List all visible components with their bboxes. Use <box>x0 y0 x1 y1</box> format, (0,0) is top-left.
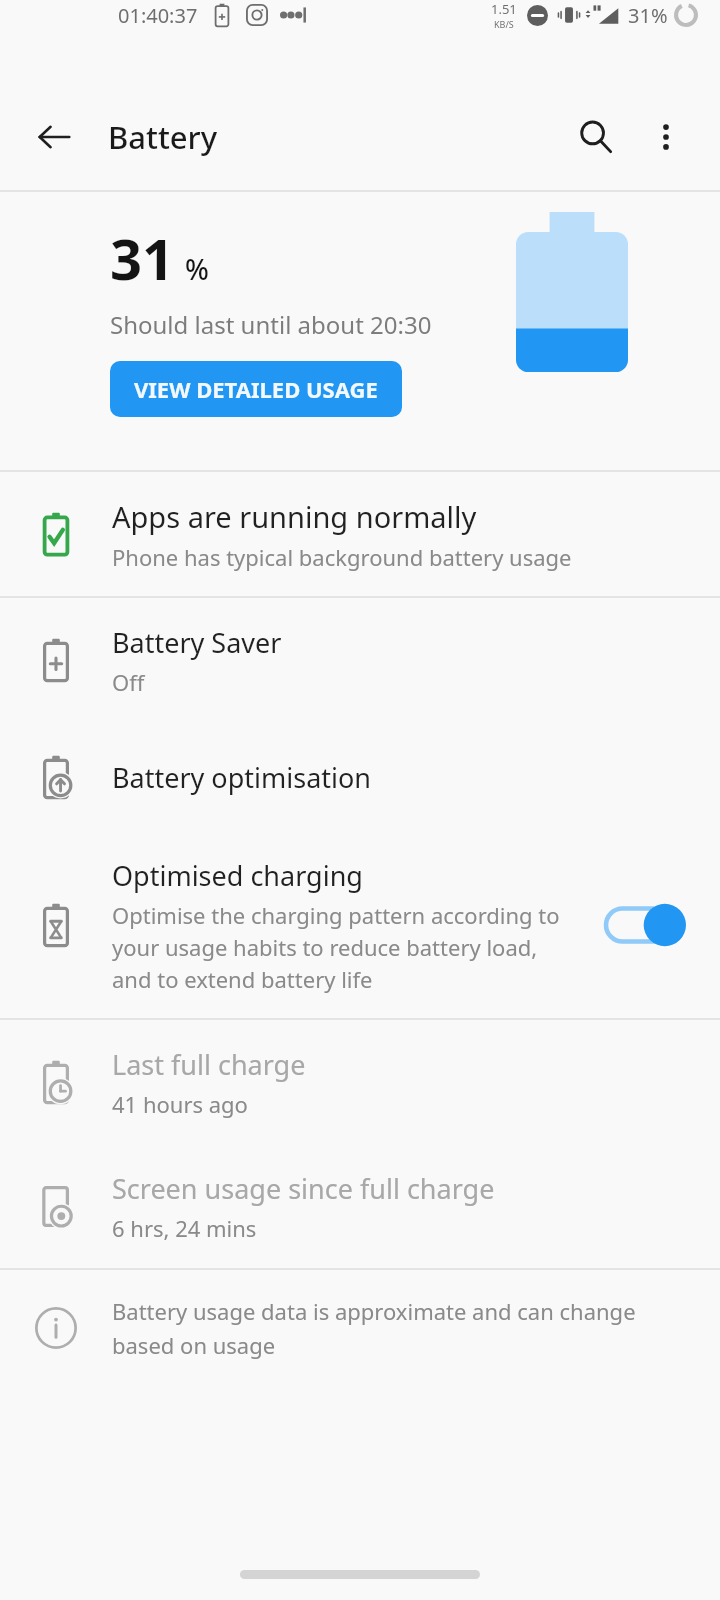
staticText: Optimised charging <box>112 857 363 894</box>
staticText: Last full charge <box>112 1046 306 1083</box>
staticText: Should last until about 20:30 <box>110 308 432 341</box>
button[interactable]: More options <box>638 109 694 165</box>
staticText: Battery usage data is approximate and ca… <box>112 1296 636 1326</box>
staticText: Phone has typical background battery usa… <box>112 542 572 572</box>
staticText: KB/S <box>494 18 514 30</box>
staticText: 31 <box>110 220 175 296</box>
staticText: 1.51 <box>491 0 517 18</box>
button[interactable]: Back <box>26 109 82 165</box>
staticText: 41 hours ago <box>112 1089 248 1119</box>
staticText: based on usage <box>112 1330 276 1360</box>
button[interactable]: Last full charge <box>0 1020 720 1144</box>
staticText: Battery <box>108 116 218 158</box>
staticText: 31% <box>628 2 668 29</box>
button[interactable]: Screen usage since full charge <box>0 1144 720 1268</box>
staticText: Optimise the charging pattern according … <box>112 900 560 930</box>
button[interactable]: VIEW DETAILED USAGE <box>110 361 402 417</box>
staticText: Battery optimisation <box>112 759 372 796</box>
staticText: % <box>185 250 209 288</box>
staticText: and to extend battery life <box>112 964 373 994</box>
staticText: 01:40:37 <box>118 2 198 29</box>
staticText: your usage habits to reduce battery load… <box>112 932 538 962</box>
staticText: Off <box>112 667 145 697</box>
button[interactable]: Optimised charging <box>0 832 720 1018</box>
button[interactable]: Apps are running normally <box>0 472 720 596</box>
button[interactable]: Search <box>566 107 626 167</box>
staticText: Battery Saver <box>112 624 282 661</box>
button[interactable]: Battery Saver <box>0 598 720 722</box>
staticText: Screen usage since full charge <box>112 1170 495 1207</box>
button[interactable]: Battery optimisation <box>0 722 720 832</box>
button[interactable]: Optimised charging toggle <box>606 902 686 948</box>
staticText: 6 hrs, 24 mins <box>112 1213 257 1243</box>
staticText: Apps are running normally <box>112 497 477 536</box>
staticText: VIEW DETAILED USAGE <box>134 374 378 404</box>
